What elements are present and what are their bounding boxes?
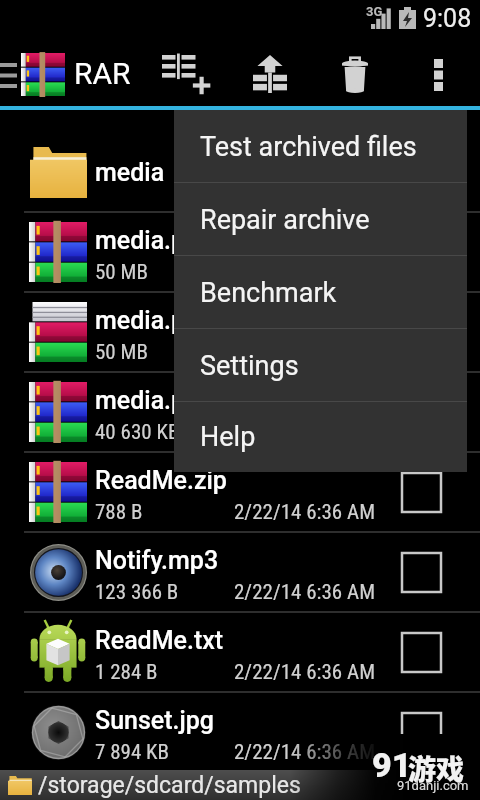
button[interactable]: Select ReadMe.zip	[389, 453, 453, 531]
staticText: /storage/sdcard/samples	[38, 772, 301, 799]
staticText: Sunset.jpg	[95, 706, 214, 735]
button[interactable]: More options	[410, 44, 466, 104]
staticText: media.part1.rar	[95, 226, 269, 255]
staticText: 50 MB	[95, 260, 148, 285]
button[interactable]: Settings	[174, 329, 467, 402]
button[interactable]: Sunset.jpg	[0, 693, 480, 773]
staticText: 1 284 B	[95, 660, 158, 685]
staticText: 2/22/14 6:36 AM	[234, 420, 376, 445]
staticText: Benchmark	[200, 277, 337, 309]
button[interactable]: media	[0, 133, 480, 213]
staticText: 2/22/14 6:36 AM	[234, 740, 376, 765]
button[interactable]: Repair archive	[174, 183, 467, 256]
button[interactable]: Help	[174, 402, 467, 472]
staticText: Notify.mp3	[95, 546, 219, 575]
staticText: 91	[372, 745, 412, 785]
staticText: 7 894 KB	[95, 740, 170, 765]
staticText: 2/22/14 6:36 AM	[234, 580, 376, 605]
button[interactable]: media.part2.rar	[0, 293, 480, 373]
staticText: Test archived files	[200, 131, 417, 163]
staticText: Settings	[200, 350, 299, 382]
button[interactable]: Select Notify.mp3	[389, 533, 453, 611]
button[interactable]: Test archived files	[174, 110, 467, 183]
staticText: media.part3.rar	[95, 386, 269, 415]
staticText: 2/22/14 6:36 AM	[234, 660, 376, 685]
staticText: 2/22/14 6:36 AM	[234, 340, 376, 365]
staticText: 40 630 KB	[95, 420, 180, 445]
staticText: 2/22/14 6:36 AM	[234, 260, 376, 285]
button[interactable]: ReadMe.zip	[0, 453, 480, 533]
staticText: ReadMe.zip	[95, 466, 227, 495]
button[interactable]: Select Sunset.jpg	[389, 693, 453, 771]
staticText: 9:08	[423, 4, 472, 33]
staticText: 2/22/14 6:36 AM	[234, 500, 376, 525]
button[interactable]: Benchmark	[174, 256, 467, 329]
button[interactable]: media.part3.rar	[0, 373, 480, 453]
staticText: 50 MB	[95, 340, 148, 365]
staticText: media	[95, 158, 165, 187]
button[interactable]: media.part1.rar	[0, 213, 480, 293]
staticText: 游戏	[408, 748, 465, 789]
button[interactable]: Extract files	[240, 44, 300, 104]
staticText: 91danji.com	[397, 778, 469, 793]
button[interactable]: ReadMe.txt	[0, 613, 480, 693]
staticText: Repair archive	[200, 204, 370, 236]
button[interactable]: Notify.mp3	[0, 533, 480, 613]
staticText: Help	[200, 421, 256, 453]
staticText: 3G	[366, 4, 383, 19]
button[interactable]: Navigate up	[0, 36, 137, 106]
button[interactable]: Add to archive	[156, 47, 218, 107]
staticText: RAR	[74, 56, 131, 91]
staticText: 788 B	[95, 500, 143, 525]
button[interactable]: Select ReadMe.txt	[389, 613, 453, 691]
staticText: 123 366 B	[95, 580, 179, 605]
button[interactable]: /storage/sdcard/samples	[0, 770, 480, 800]
staticText: ReadMe.txt	[95, 626, 224, 655]
staticText: media.part2.rar	[95, 306, 269, 335]
button[interactable]: Delete	[325, 45, 385, 105]
